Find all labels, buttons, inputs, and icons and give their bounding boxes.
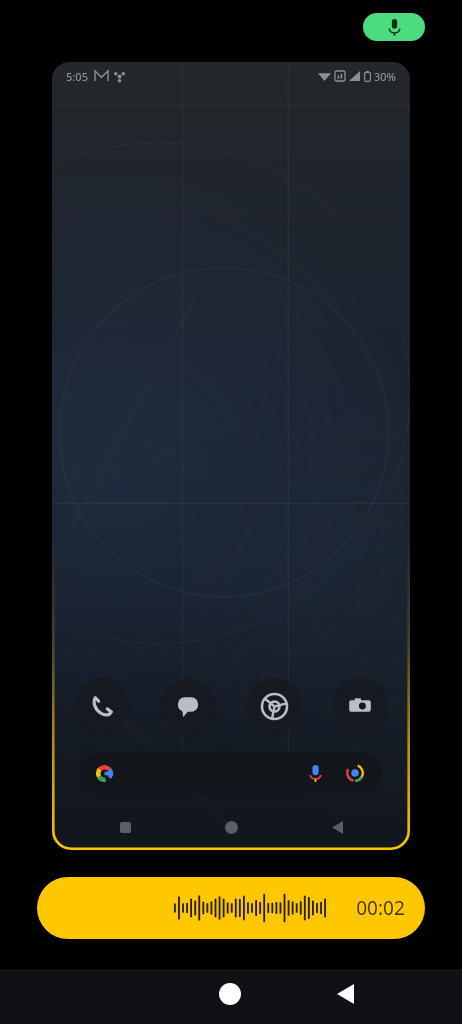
button[interactable]: Phone bbox=[74, 678, 130, 734]
button[interactable]: Google Lens bbox=[344, 762, 366, 784]
staticText: 30% bbox=[374, 69, 396, 84]
button[interactable]: 00:02 bbox=[37, 877, 425, 939]
button[interactable]: Back bbox=[320, 969, 370, 1019]
button[interactable]: Back bbox=[322, 814, 352, 840]
button[interactable]: Chrome bbox=[246, 678, 302, 734]
button[interactable]: Voice search bbox=[80, 752, 382, 794]
button[interactable]: Recents bbox=[110, 814, 140, 840]
button[interactable]: Voice search bbox=[304, 762, 326, 784]
staticText: 5:05 bbox=[66, 69, 88, 84]
staticText: 00:02 bbox=[356, 895, 405, 921]
button[interactable]: Home bbox=[205, 969, 255, 1019]
button[interactable]: Voice input bbox=[363, 13, 425, 41]
button[interactable]: Home bbox=[216, 814, 246, 840]
button[interactable]: Messages bbox=[160, 678, 216, 734]
button[interactable]: Camera bbox=[332, 678, 388, 734]
